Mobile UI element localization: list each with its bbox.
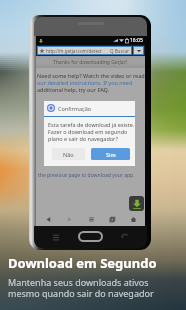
staticText: Need some help? Watch the video or read	[37, 72, 145, 79]
button[interactable]: Download	[129, 196, 144, 211]
button[interactable]: Home	[124, 212, 142, 226]
button[interactable]: http://m.getjar.com/detect	[38, 47, 131, 54]
staticText: additional help, try our FAQ.	[37, 86, 110, 93]
staticText: our detailed instructions. If you need	[37, 79, 133, 86]
staticText: 16:05	[130, 37, 143, 44]
button[interactable]: Bookmarks	[82, 212, 100, 226]
button[interactable]: Tabs	[103, 212, 121, 226]
staticText: Q Buscar	[110, 48, 130, 54]
staticText: Mantenha seus downloads ativos mesmo qua…	[8, 276, 154, 300]
button[interactable]: Home	[78, 231, 103, 242]
staticText: Download em Segundo Plano	[8, 254, 186, 272]
staticText: the previous page to download your app.	[38, 172, 135, 179]
staticText: Thanks for downloading GetJar!	[53, 59, 128, 66]
staticText: Não	[63, 151, 74, 158]
button[interactable]: Forward	[60, 212, 78, 226]
button[interactable]: Tabs	[134, 47, 143, 54]
staticText: Esta tarefa de download já existe. Fazer…	[48, 121, 135, 142]
button[interactable]: Sim	[91, 148, 130, 160]
staticText: http://m.getjar.com/detect	[46, 48, 102, 54]
button[interactable]: Não	[52, 148, 85, 160]
button[interactable]: Back	[39, 212, 57, 226]
staticText: Confirmação	[58, 105, 92, 112]
staticText: Sim	[106, 151, 116, 158]
